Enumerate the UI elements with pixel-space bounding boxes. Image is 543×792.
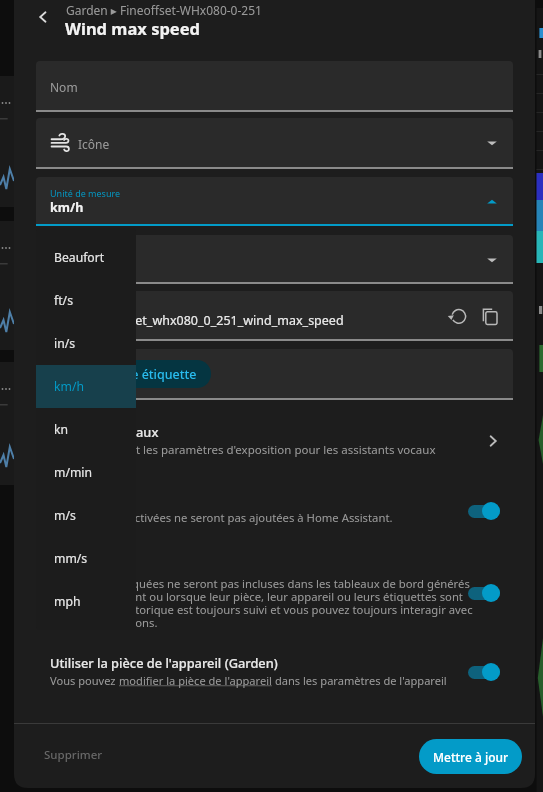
button[interactable]: Toggle (468, 587, 500, 600)
button[interactable]: ft/s (36, 279, 136, 322)
staticText: Assistants vocaux (50, 423, 159, 440)
button[interactable] (36, 349, 513, 398)
button[interactable]: mph (36, 580, 136, 622)
button[interactable]: mm/s (36, 537, 136, 580)
staticText: Précision affichée (50, 245, 125, 257)
other: Expand (484, 135, 500, 151)
button[interactable]: Toggle (468, 505, 500, 518)
staticText: kn (54, 421, 69, 438)
staticText: Par défaut (2) (50, 257, 135, 274)
button[interactable]: kn (36, 408, 136, 451)
staticText: Garden ▸ Fineoffset-WHx080-0-251 (66, 2, 262, 18)
button[interactable] (36, 177, 513, 224)
staticText: Supprimer (44, 747, 103, 763)
staticText: mm/s (54, 550, 88, 567)
other: Expand (484, 252, 500, 268)
staticText: Gérez les alias et les paramètres d'expo… (50, 442, 436, 458)
staticText: ft/s (54, 292, 73, 309)
button[interactable] (36, 61, 513, 110)
button[interactable]: Mettre à jour (419, 739, 522, 774)
button[interactable] (36, 235, 513, 282)
staticText: m/min (54, 464, 93, 481)
button[interactable]: Back (29, 3, 57, 31)
staticText: km/h (54, 378, 84, 395)
button[interactable] (14, 648, 535, 694)
staticText: in/s (54, 335, 76, 352)
staticText: Icône (78, 136, 110, 152)
staticText: km/h (50, 199, 84, 216)
button[interactable]: Copy entity id (475, 302, 503, 330)
other: Open voice assistant settings (485, 433, 501, 449)
button[interactable] (14, 414, 535, 460)
button[interactable]: Supprimer (36, 744, 111, 766)
button[interactable]: Beaufort (36, 236, 136, 279)
staticText: modifier la pièce de l'appareil (119, 673, 272, 688)
staticText: sensor.fineoffset_whx080_0_251_wind_max_… (50, 312, 344, 329)
button[interactable]: km/h (36, 365, 136, 408)
button[interactable] (36, 118, 513, 167)
staticText: Mettre à jour (433, 749, 509, 765)
button[interactable]: Ajouter une étiquette (54, 360, 211, 388)
other: Expand (484, 194, 500, 210)
staticText: Unité de mesure (50, 187, 121, 199)
staticText: dans les paramètres de l'appareil (272, 673, 447, 688)
staticText: Ajouter une étiquette (68, 366, 197, 383)
staticText: Beaufort (54, 249, 105, 266)
staticText: Visible (50, 552, 90, 569)
button[interactable]: Restore default (443, 302, 471, 330)
staticText: mph (54, 593, 81, 610)
button[interactable]: m/min (36, 451, 136, 494)
button[interactable] (14, 548, 535, 630)
button[interactable]: Toggle (468, 666, 500, 679)
staticText: Vous pouvez (50, 673, 119, 688)
staticText: m/s (54, 507, 76, 524)
button[interactable] (36, 291, 513, 339)
staticText: Nom (50, 79, 78, 95)
staticText: Les entités masquées ne seront pas inclu… (50, 576, 482, 631)
button[interactable] (14, 484, 535, 532)
staticText: Wind max speed (65, 17, 200, 39)
staticText: Utiliser la pièce de l'appareil (Garden) (50, 654, 278, 671)
button[interactable]: m/s (36, 494, 136, 537)
staticText: ID d'entité (50, 301, 94, 313)
button[interactable]: in/s (36, 322, 136, 365)
staticText: Les entités désactivées ne seront pas aj… (50, 510, 393, 525)
